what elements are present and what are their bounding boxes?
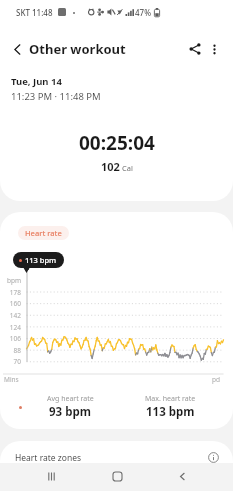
staticText: 113 bpm <box>146 404 195 420</box>
staticText: Heart rate zones <box>15 452 82 463</box>
button[interactable]: Back <box>167 462 197 491</box>
staticText: 88 <box>0 346 21 355</box>
staticText: Cal <box>122 163 133 173</box>
staticText: 106 <box>0 334 21 343</box>
other: Info <box>208 452 219 463</box>
staticText: 00:25:04 <box>79 130 155 156</box>
staticText: Mins <box>4 375 19 384</box>
button[interactable]: Share <box>183 37 207 61</box>
staticText: Tue, Jun 14 <box>11 75 62 88</box>
staticText: 113 bpm <box>25 255 57 265</box>
staticText: pd <box>212 375 220 384</box>
staticText: 70 <box>0 357 21 366</box>
staticText: 124 <box>0 323 21 332</box>
button[interactable]: Navigate up <box>6 38 28 60</box>
button[interactable]: More options <box>202 37 226 61</box>
staticText: 160 <box>0 299 21 308</box>
button[interactable]: Heart rate zones <box>0 441 233 463</box>
staticText: 142 <box>0 311 21 320</box>
button[interactable]: Home <box>102 462 132 491</box>
staticText: Avg heart rate <box>47 394 94 404</box>
staticText: bpm <box>0 276 21 285</box>
staticText: Other workout <box>29 40 126 58</box>
staticText: 93 bpm <box>49 404 91 420</box>
staticText: 47% <box>135 7 151 18</box>
staticText: Max. heart rate <box>145 394 196 404</box>
staticText: Heart rate <box>25 228 62 238</box>
staticText: 178 <box>0 288 21 297</box>
button[interactable]: Heart rate <box>18 226 69 240</box>
button[interactable]: Recent apps <box>36 462 66 491</box>
staticText: SKT 11:48 <box>16 7 53 18</box>
staticText: 11:23 PM · 11:48 PM <box>11 90 101 103</box>
staticText: 102 <box>101 159 120 174</box>
